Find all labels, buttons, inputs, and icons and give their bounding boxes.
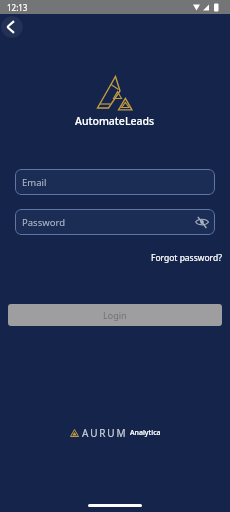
- staticText: Password: [22, 216, 65, 229]
- button[interactable]: Password: [15, 209, 215, 235]
- staticText: AutomateLeads: [75, 114, 155, 128]
- staticText: Forgot password?: [151, 252, 222, 264]
- button[interactable]: Forgot password?: [0, 252, 230, 264]
- staticText: Email: [22, 176, 47, 189]
- button[interactable]: Login: [8, 304, 222, 326]
- staticText: Login: [103, 309, 127, 321]
- button[interactable]: [1, 16, 23, 38]
- staticText: 12:13: [7, 2, 28, 13]
- staticText: AURUM: [82, 426, 128, 440]
- button[interactable]: Email: [15, 169, 215, 195]
- staticText: Analytica: [130, 428, 161, 438]
- button[interactable]: [193, 213, 211, 231]
